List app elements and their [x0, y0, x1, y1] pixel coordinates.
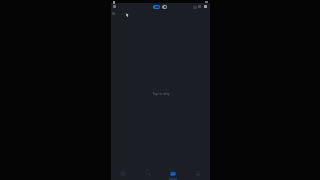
staticText: Tap to retry — [152, 92, 170, 96]
button[interactable]: Saved — [160, 166, 185, 180]
staticText: Saved — [169, 177, 177, 180]
